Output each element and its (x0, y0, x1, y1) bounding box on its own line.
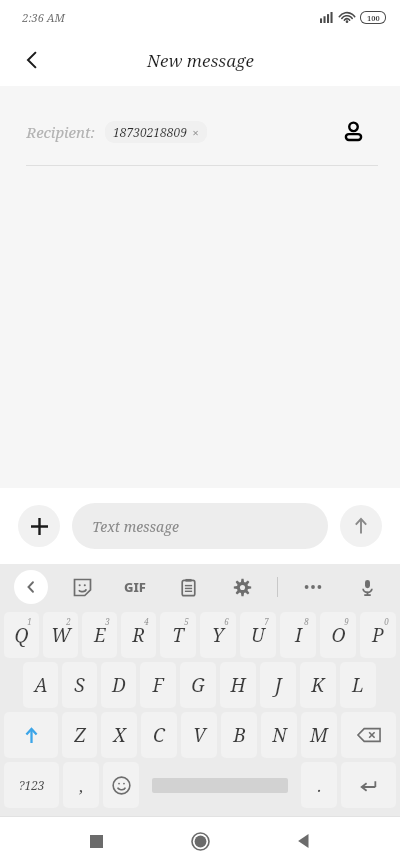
button[interactable]: G (180, 662, 216, 708)
staticText: U (251, 622, 265, 648)
staticText: A (34, 672, 48, 698)
button[interactable]: U (240, 612, 276, 658)
staticText: 0 (384, 616, 389, 627)
staticText: Recipient: (26, 122, 95, 142)
staticText: N (272, 722, 287, 748)
button[interactable]: B (221, 712, 257, 758)
button[interactable]: Clipboard (169, 568, 207, 606)
staticText: B (233, 722, 246, 748)
button[interactable]: Back (8, 36, 56, 84)
staticText: 5 (184, 616, 189, 627)
staticText: E (94, 622, 106, 648)
staticText: Z (74, 722, 86, 748)
staticText: S (74, 672, 85, 698)
button[interactable]: , (63, 762, 99, 808)
button[interactable]: Emoji (103, 762, 139, 808)
button[interactable]: GIF (116, 568, 154, 606)
staticText: GIF (124, 578, 146, 596)
staticText: K (311, 672, 325, 698)
button[interactable]: . (301, 762, 337, 808)
button[interactable]: More options (294, 568, 332, 606)
staticText: J (275, 672, 282, 698)
staticText: 7 (264, 616, 269, 627)
button[interactable]: I (280, 612, 316, 658)
staticText: . (317, 774, 322, 797)
staticText: 100 (367, 13, 380, 23)
staticText: L (352, 672, 364, 698)
staticText: H (230, 672, 246, 698)
staticText: , (79, 774, 84, 797)
staticText: T (172, 622, 184, 648)
button[interactable]: Send (340, 505, 382, 547)
staticText: C (153, 722, 165, 748)
button[interactable]: A (23, 662, 58, 708)
staticText: M (310, 722, 328, 748)
button[interactable]: 18730218809 (105, 121, 207, 143)
button[interactable]: P (360, 612, 396, 658)
button[interactable]: Stickers (63, 568, 101, 606)
staticText: × (192, 125, 199, 140)
staticText: 2:36 AM (22, 10, 65, 25)
button[interactable] (143, 762, 297, 808)
staticText: ?123 (18, 777, 45, 793)
button[interactable]: F (140, 662, 176, 708)
button[interactable]: Home (178, 819, 222, 863)
staticText: 1 (27, 616, 32, 627)
button[interactable]: Backspace (341, 712, 396, 758)
staticText: 3 (105, 616, 110, 627)
staticText: 9 (344, 616, 349, 627)
button[interactable]: Collapse toolbar (14, 570, 48, 604)
staticText: X (113, 722, 126, 748)
button[interactable]: O (320, 612, 356, 658)
button[interactable]: Y (200, 612, 236, 658)
staticText: Q (14, 622, 29, 648)
button[interactable]: E (82, 612, 117, 658)
staticText: O (331, 622, 346, 648)
button[interactable]: Q (4, 612, 39, 658)
button[interactable]: L (340, 662, 376, 708)
button[interactable]: X (101, 712, 137, 758)
staticText: 2 (66, 616, 71, 627)
button[interactable]: K (300, 662, 336, 708)
button[interactable]: R (121, 612, 156, 658)
button[interactable]: J (260, 662, 296, 708)
staticText: G (191, 672, 205, 698)
staticText: P (372, 622, 384, 648)
button[interactable]: Z (62, 712, 97, 758)
staticText: D (112, 672, 126, 698)
staticText: F (152, 672, 164, 698)
staticText: Y (212, 622, 224, 648)
staticText: I (295, 622, 302, 648)
button[interactable]: N (261, 712, 297, 758)
button[interactable]: Enter (341, 762, 396, 808)
button[interactable]: Add attachment (18, 505, 60, 547)
button[interactable]: Choose contact (332, 111, 374, 153)
staticText: W (51, 622, 71, 648)
button[interactable]: Settings (223, 568, 261, 606)
button[interactable]: W (43, 612, 78, 658)
staticText: V (193, 722, 206, 748)
button[interactable]: T (160, 612, 196, 658)
staticText: New message (147, 49, 254, 72)
button[interactable]: ?123 (4, 762, 59, 808)
button[interactable]: M (301, 712, 337, 758)
button[interactable]: H (220, 662, 256, 708)
staticText: Text message (92, 517, 179, 536)
button[interactable]: V (181, 712, 217, 758)
staticText: 4 (144, 616, 149, 627)
staticText: 6 (224, 616, 229, 627)
button[interactable]: D (101, 662, 136, 708)
staticText: 18730218809 (113, 124, 187, 140)
staticText: R (132, 622, 145, 648)
button[interactable]: Text message (72, 503, 328, 549)
button[interactable]: Shift (4, 712, 58, 758)
button[interactable]: Back (282, 819, 326, 863)
button[interactable]: S (62, 662, 97, 708)
button[interactable]: C (141, 712, 177, 758)
button[interactable]: Voice input (348, 568, 386, 606)
button[interactable]: Recent apps (74, 819, 118, 863)
staticText: 8 (304, 616, 309, 627)
